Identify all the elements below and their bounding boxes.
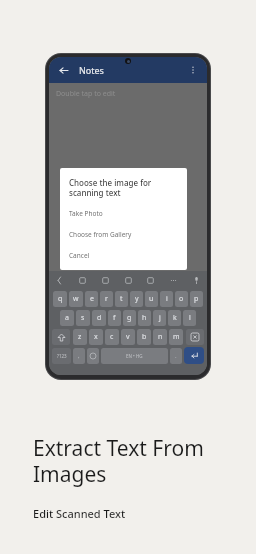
button[interactable]: Toolbar item (168, 275, 179, 286)
button[interactable]: u (145, 291, 158, 307)
staticText: r (105, 294, 108, 304)
button[interactable]: z (73, 329, 87, 345)
staticText: k (173, 313, 177, 323)
button[interactable]: m (169, 329, 183, 345)
button[interactable]: Take Photo (69, 209, 178, 218)
staticText: l (189, 313, 191, 323)
button[interactable] (52, 329, 70, 345)
button[interactable]: Toolbar item (77, 275, 88, 286)
button[interactable]: l (183, 310, 196, 326)
staticText: n (158, 332, 163, 342)
button[interactable]: s (76, 310, 90, 326)
staticText: s (81, 313, 85, 323)
staticText: Double tap to edit (56, 89, 116, 99)
button[interactable]: f (108, 310, 121, 326)
staticText: Edit Scanned Text (33, 506, 126, 521)
staticText: e (90, 294, 94, 304)
staticText: p (194, 294, 199, 304)
staticText: g (127, 313, 132, 323)
staticText: v (126, 332, 130, 342)
button[interactable]: p (190, 291, 203, 307)
button[interactable]: o (175, 291, 188, 307)
button[interactable]: Toolbar item (145, 275, 156, 286)
staticText: t (120, 294, 123, 304)
button[interactable]: c (105, 329, 119, 345)
staticText: d (97, 313, 102, 323)
button[interactable]: j (153, 310, 166, 326)
button[interactable]: . (170, 348, 182, 364)
button[interactable]: Toolbar item (123, 275, 134, 286)
button[interactable]: i (160, 291, 173, 307)
button[interactable]: h (138, 310, 151, 326)
staticText: Notes (79, 64, 104, 76)
staticText: x (94, 332, 98, 342)
button[interactable] (186, 329, 204, 345)
button[interactable]: Cancel (69, 251, 178, 260)
button[interactable]: ?123 (52, 348, 71, 364)
staticText: Take Photo (69, 209, 103, 218)
button[interactable]: q (53, 291, 67, 307)
button[interactable]: v (121, 329, 135, 345)
button[interactable]: More options (185, 62, 201, 78)
staticText: . (175, 352, 177, 360)
button[interactable]: , (73, 348, 85, 364)
staticText: a (65, 313, 69, 323)
staticText: o (179, 294, 184, 304)
staticText: u (149, 294, 154, 304)
button[interactable]: b (137, 329, 151, 345)
staticText: ?123 (57, 353, 67, 359)
staticText: f (113, 313, 116, 323)
button[interactable]: Choose from Gallery (69, 230, 178, 239)
button[interactable]: Enter (184, 347, 204, 364)
staticText: Extract Text From Images (33, 434, 233, 488)
button[interactable]: Back (55, 62, 71, 78)
button[interactable]: r (100, 291, 113, 307)
button[interactable]: y (130, 291, 143, 307)
button[interactable]: k (168, 310, 181, 326)
staticText: Choose the image for scanning text (69, 177, 178, 198)
staticText: w (73, 294, 79, 304)
button[interactable]: EN • HG (101, 348, 168, 364)
staticText: j (159, 313, 161, 323)
button[interactable]: Toolbar item (191, 275, 202, 286)
button[interactable] (87, 348, 99, 364)
staticText: m (173, 332, 180, 342)
button[interactable]: Toolbar item (100, 275, 111, 286)
staticText: EN • HG (126, 353, 143, 359)
button[interactable]: x (89, 329, 103, 345)
button[interactable]: e (85, 291, 98, 307)
staticText: i (166, 294, 168, 304)
staticText: q (58, 294, 63, 304)
staticText: y (135, 294, 139, 304)
button[interactable]: g (123, 310, 136, 326)
button[interactable]: t (115, 291, 128, 307)
button[interactable]: n (153, 329, 167, 345)
staticText: z (78, 332, 82, 342)
button[interactable]: d (92, 310, 106, 326)
button[interactable]: Toolbar item (54, 275, 65, 286)
staticText: b (142, 332, 147, 342)
staticText: , (78, 352, 80, 360)
button[interactable]: w (69, 291, 83, 307)
staticText: Cancel (69, 251, 90, 260)
staticText: Choose from Gallery (69, 230, 132, 239)
button[interactable]: a (60, 310, 74, 326)
staticText: h (142, 313, 147, 323)
staticText: c (110, 332, 114, 342)
